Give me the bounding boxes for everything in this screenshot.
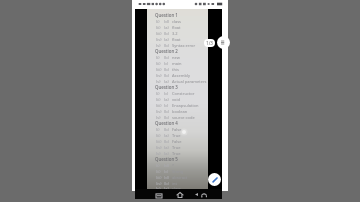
staticText: (a) — [164, 79, 172, 84]
staticText: float — [172, 37, 181, 42]
staticText: (iv) — [156, 109, 164, 114]
staticText: (ii) — [156, 25, 164, 30]
staticText: class — [172, 19, 182, 24]
staticText: (i) — [156, 127, 164, 132]
staticText: class — [172, 186, 182, 189]
staticText: (c) — [164, 103, 172, 108]
staticText: (d) — [164, 19, 172, 24]
staticText: Question 2 — [155, 48, 178, 54]
staticText: (b) — [164, 31, 172, 36]
staticText: new — [172, 55, 180, 60]
staticText: True — [172, 145, 181, 150]
staticText: Question 4 — [155, 120, 178, 126]
staticText: (ii) — [156, 97, 164, 102]
staticText: 3.2 — [172, 31, 178, 36]
staticText: boolean — [172, 109, 188, 114]
staticText: main — [172, 61, 182, 66]
button[interactable]: Recent apps — [154, 190, 164, 200]
staticText: * — [172, 163, 175, 168]
staticText: Actual parameters — [172, 79, 207, 84]
staticText: (ii) — [156, 61, 164, 66]
staticText: (a) — [164, 133, 172, 138]
staticText: Syntax error — [172, 43, 196, 48]
staticText: (a) — [164, 25, 172, 30]
staticText: int — [172, 181, 177, 186]
staticText: (c) — [164, 169, 172, 174]
staticText: (a) — [164, 151, 172, 156]
staticText: (i) — [156, 55, 164, 60]
staticText: this — [172, 67, 179, 72]
staticText: Question 3 — [155, 84, 178, 90]
staticText: (v) — [156, 43, 164, 48]
staticText: (b) — [164, 115, 172, 120]
staticText: (iv) — [156, 73, 164, 78]
staticText: Question 1 — [155, 12, 178, 18]
staticText: (a) — [164, 186, 172, 189]
staticText: (c) — [164, 61, 172, 66]
staticText: Question 5 — [155, 156, 178, 162]
staticText: (c) — [164, 91, 172, 96]
staticText: Constructor overloading — [172, 91, 208, 96]
staticText: (b) — [164, 139, 172, 144]
staticText: (b) — [164, 127, 172, 132]
staticText: (b) — [164, 55, 172, 60]
button[interactable]: Edit — [208, 173, 221, 186]
staticText: (v) — [156, 151, 164, 156]
staticText: (ii) — [156, 169, 164, 174]
staticText: (a) — [164, 97, 172, 102]
staticText: (d) — [164, 163, 172, 168]
staticText: (iii) — [156, 31, 164, 36]
button[interactable]: Page options — [217, 36, 230, 49]
staticText: (iii) — [156, 139, 164, 144]
staticText: (b) — [164, 43, 172, 48]
staticText: (b) — [164, 73, 172, 78]
staticText: (d) — [164, 175, 172, 180]
staticText: (i) — [156, 163, 164, 168]
staticText: (v) — [156, 115, 164, 120]
staticText: (v) — [156, 186, 164, 189]
staticText: void — [172, 97, 180, 102]
staticText: False — [172, 127, 182, 132]
staticText: True — [172, 151, 181, 156]
staticText: source code — [172, 115, 195, 120]
staticText: float — [172, 25, 181, 30]
staticText: (iii) — [156, 175, 164, 180]
button[interactable]: 1/3 — [204, 39, 215, 47]
staticText: 1/3 — [206, 40, 213, 46]
staticText: abstract — [172, 175, 188, 180]
staticText: (iv) — [156, 181, 164, 186]
staticText: (a) — [164, 145, 172, 150]
staticText: (b) — [164, 67, 172, 72]
staticText: (i) — [156, 91, 164, 96]
staticText: False — [172, 139, 182, 144]
staticText: (iv) — [156, 37, 164, 42]
staticText: (iii) — [156, 67, 164, 72]
staticText: (b) — [164, 109, 172, 114]
staticText: (ii) — [156, 133, 164, 138]
staticText: (i) — [156, 19, 164, 24]
button[interactable]: Back — [199, 190, 209, 200]
staticText: True — [172, 133, 181, 138]
staticText: (a) — [164, 37, 172, 42]
staticText: Assembly — [172, 73, 190, 78]
staticText: (iii) — [156, 103, 164, 108]
staticText: (v) — [156, 79, 164, 84]
button[interactable]: Home — [175, 190, 185, 200]
staticText: (b) — [164, 181, 172, 186]
staticText: Encapsulation — [172, 103, 199, 108]
staticText: (iv) — [156, 145, 164, 150]
